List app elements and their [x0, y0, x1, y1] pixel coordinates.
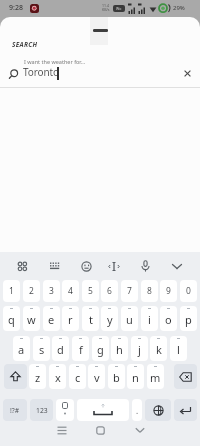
- button[interactable]: [96, 426, 105, 435]
- staticText: o: [165, 312, 172, 327]
- staticText: 5: [88, 285, 93, 297]
- button[interactable]: 9: [160, 280, 177, 302]
- staticText: s: [39, 342, 45, 357]
- button[interactable]: v: [88, 364, 105, 389]
- staticText: !?#: [10, 406, 20, 415]
- staticText: 0: [186, 285, 191, 297]
- button[interactable]: 0: [180, 280, 197, 302]
- button[interactable]: u: [121, 306, 138, 331]
- button[interactable]: 5: [82, 280, 99, 302]
- staticText: I want the weather for...: [24, 58, 86, 65]
- button[interactable]: [56, 399, 74, 421]
- button[interactable]: 8: [141, 280, 158, 302]
- button[interactable]: l: [170, 336, 187, 361]
- staticText: 11.4 KB/s: [102, 3, 110, 12]
- button[interactable]: [108, 261, 120, 272]
- staticText: 3: [49, 285, 54, 297]
- button[interactable]: !?#: [3, 399, 27, 421]
- button[interactable]: i: [141, 306, 158, 331]
- button[interactable]: [135, 427, 145, 434]
- button[interactable]: I want the weather for...: [0, 55, 200, 87]
- staticText: Toronto: [23, 65, 60, 79]
- button[interactable]: [81, 261, 92, 272]
- button[interactable]: s: [33, 336, 50, 361]
- staticText: 2: [29, 285, 34, 297]
- button[interactable]: c: [69, 364, 86, 389]
- button[interactable]: b: [108, 364, 125, 389]
- staticText: 1: [9, 285, 14, 297]
- button[interactable]: o: [160, 306, 177, 331]
- button[interactable]: [17, 261, 28, 272]
- staticText: d: [57, 342, 64, 357]
- button[interactable]: [140, 260, 151, 273]
- button[interactable]: e: [43, 306, 60, 331]
- staticText: 9: [166, 285, 171, 297]
- button[interactable]: w: [23, 306, 40, 331]
- button[interactable]: z: [29, 364, 46, 389]
- button[interactable]: [49, 261, 60, 272]
- staticText: 7: [127, 285, 132, 297]
- button[interactable]: j: [131, 336, 148, 361]
- button[interactable]: 4: [62, 280, 79, 302]
- button[interactable]: n: [127, 364, 144, 389]
- staticText: r: [68, 312, 73, 327]
- staticText: z: [35, 370, 41, 385]
- button[interactable]: x: [49, 364, 66, 389]
- button[interactable]: q: [3, 306, 20, 331]
- button[interactable]: h: [111, 336, 128, 361]
- button[interactable]: y: [101, 306, 118, 331]
- staticText: u: [126, 312, 133, 327]
- staticText: c: [75, 370, 81, 385]
- button[interactable]: 3: [43, 280, 60, 302]
- staticText: t: [89, 312, 93, 327]
- staticText: 8: [147, 285, 152, 297]
- button[interactable]: 2: [23, 280, 40, 302]
- staticText: q: [8, 312, 15, 327]
- button[interactable]: t: [82, 306, 99, 331]
- staticText: w: [27, 312, 36, 327]
- staticText: g: [97, 342, 104, 357]
- button[interactable]: p: [180, 306, 197, 331]
- staticText: 29%: [173, 4, 185, 12]
- button[interactable]: [4, 364, 27, 389]
- staticText: y: [107, 312, 113, 327]
- staticText: 9:28: [9, 3, 23, 13]
- button[interactable]: 1: [3, 280, 20, 302]
- staticText: n: [132, 370, 139, 385]
- staticText: p: [185, 312, 192, 327]
- staticText: 6: [107, 285, 112, 297]
- staticText: 123: [36, 406, 48, 415]
- button[interactable]: m: [147, 364, 164, 389]
- button[interactable]: k: [150, 336, 167, 361]
- staticText: .: [136, 405, 139, 416]
- staticText: a: [18, 342, 25, 357]
- staticText: e: [48, 312, 55, 327]
- button[interactable]: r: [62, 306, 79, 331]
- button[interactable]: 6: [101, 280, 118, 302]
- staticText: x: [55, 370, 61, 385]
- button[interactable]: [57, 426, 67, 435]
- staticText: b: [113, 370, 120, 385]
- staticText: f: [79, 342, 83, 357]
- button[interactable]: [77, 399, 129, 421]
- button[interactable]: .: [132, 399, 142, 421]
- staticText: i: [148, 312, 151, 327]
- staticText: k: [156, 342, 162, 357]
- button[interactable]: [171, 263, 183, 270]
- button[interactable]: 123: [30, 399, 53, 421]
- button[interactable]: d: [52, 336, 69, 361]
- button[interactable]: [145, 399, 171, 421]
- button[interactable]: g: [92, 336, 109, 361]
- staticText: l: [177, 342, 180, 357]
- staticText: 4: [68, 285, 73, 297]
- staticText: j: [138, 342, 141, 357]
- button[interactable]: [179, 65, 196, 82]
- button[interactable]: [174, 399, 197, 421]
- staticText: SEARCH: [12, 40, 38, 49]
- button[interactable]: 7: [121, 280, 138, 302]
- button[interactable]: a: [13, 336, 30, 361]
- button[interactable]: f: [72, 336, 89, 361]
- staticText: Wo: [116, 6, 122, 11]
- staticText: v: [94, 370, 100, 385]
- button[interactable]: [174, 364, 197, 389]
